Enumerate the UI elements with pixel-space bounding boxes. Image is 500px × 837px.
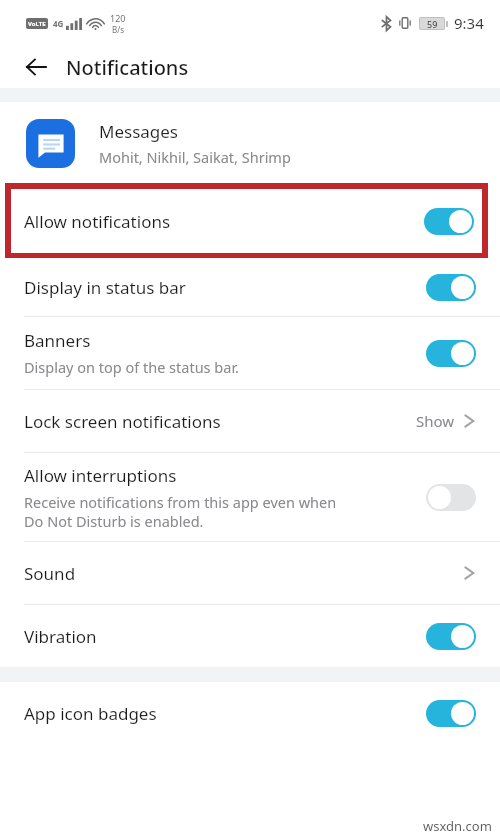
staticText: Allow notifications [24,210,424,233]
button[interactable]: Back [16,47,56,87]
button[interactable]: On [426,340,476,367]
staticText: Receive notifications from this app even… [24,492,337,531]
staticText: 9:34 [454,13,484,33]
button[interactable]: Display in status bar [0,258,500,316]
button[interactable]: On [426,623,476,650]
button[interactable]: Banners [0,317,500,389]
staticText: Lock screen notifications [24,410,221,433]
button[interactable]: Sound [0,542,500,604]
staticText: Messages [99,120,179,143]
button[interactable]: App icon badges [0,682,500,744]
button[interactable]: Allow notifications [0,184,500,258]
staticText: wsxdn.com [423,817,492,835]
button[interactable]: On [426,700,476,727]
button[interactable]: Allow interruptions [0,453,500,541]
staticText: Notifications [66,54,189,81]
button[interactable]: Off [426,484,476,511]
button[interactable]: Lock screen notifications [0,390,500,452]
staticText: 59 [427,18,438,29]
staticText: Sound [24,562,76,585]
staticText: Display on top of the status bar. [24,357,239,377]
staticText: Vibration [24,625,97,648]
staticText: Show [416,411,455,431]
staticText: B/s [112,24,125,35]
staticText: 120 [110,12,126,24]
button[interactable]: Vibration [0,605,500,667]
staticText: App icon badges [24,702,157,725]
staticText: Mohit, Nikhil, Saikat, Shrimp [99,147,291,167]
staticText: Banners [24,329,91,352]
staticText: VoLTE [28,20,46,28]
staticText: Display in status bar [24,276,186,299]
staticText: Allow interruptions [24,464,177,487]
button[interactable]: Messages [0,102,500,184]
staticText: 4G [53,18,64,29]
button[interactable]: On [424,208,474,235]
button[interactable]: On [426,274,476,301]
